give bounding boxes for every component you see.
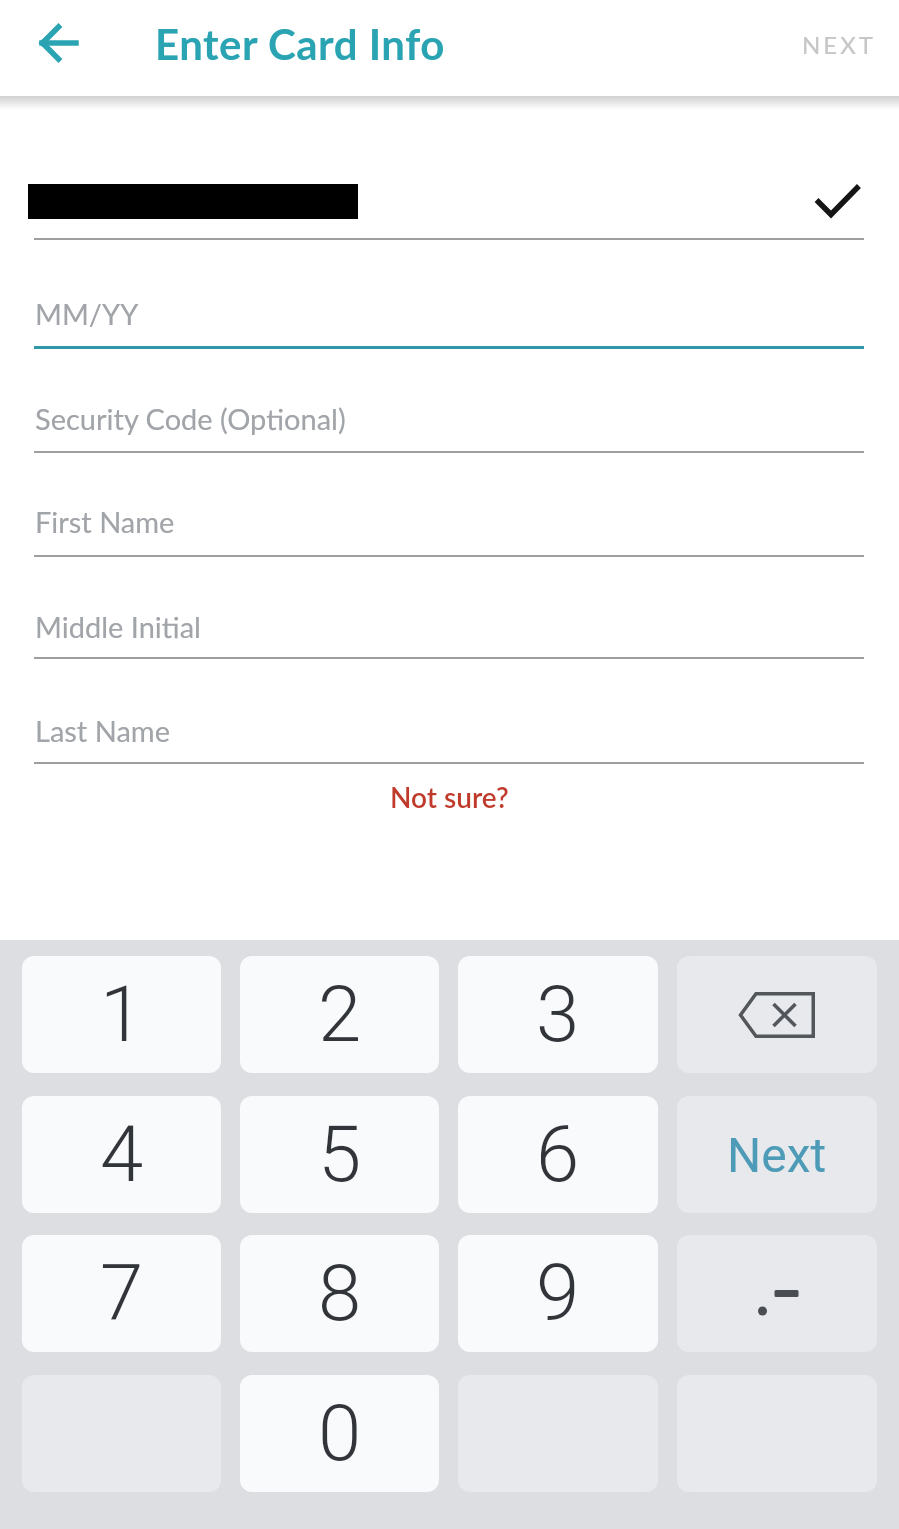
staticText: First Name: [35, 504, 175, 539]
button[interactable]: 0: [240, 1375, 439, 1492]
button[interactable]: Security Code (Optional): [34, 383, 864, 453]
button[interactable]: NEXT: [802, 30, 876, 59]
button[interactable]: Next: [677, 1096, 877, 1213]
button[interactable]: Middle Initial: [34, 591, 864, 661]
staticText: Next: [727, 1127, 827, 1183]
button[interactable]: 3: [458, 956, 658, 1073]
button[interactable]: [677, 956, 877, 1073]
staticText: Enter Card Info: [155, 19, 445, 69]
button[interactable]: First Name: [34, 486, 864, 556]
button[interactable]: 5: [240, 1096, 439, 1213]
staticText: 7: [100, 1248, 144, 1339]
staticText: 4: [100, 1109, 144, 1200]
button[interactable]: [677, 1235, 877, 1352]
staticText: NEXT: [802, 30, 876, 59]
staticText: 2: [318, 969, 362, 1060]
staticText: 8: [318, 1248, 362, 1339]
staticText: Security Code (Optional): [35, 401, 346, 436]
staticText: 3: [536, 969, 580, 1060]
button[interactable]: 8: [240, 1235, 439, 1352]
button[interactable]: 2: [240, 956, 439, 1073]
button[interactable]: 7: [22, 1235, 221, 1352]
button[interactable]: [30, 14, 88, 72]
button[interactable]: MM/YY: [34, 278, 864, 348]
staticText: 5: [318, 1109, 362, 1200]
button[interactable]: 1: [22, 956, 221, 1073]
staticText: 9: [536, 1248, 580, 1339]
staticText: Not sure?: [390, 780, 509, 814]
button[interactable]: 9: [458, 1235, 658, 1352]
staticText: 1: [100, 969, 144, 1060]
button[interactable]: Last Name: [34, 695, 864, 765]
staticText: 6: [536, 1109, 580, 1200]
staticText: Middle Initial: [35, 609, 201, 644]
staticText: Last Name: [35, 713, 170, 748]
button[interactable]: 4: [22, 1096, 221, 1213]
staticText: 0: [318, 1388, 362, 1479]
button[interactable]: Not sure?: [390, 780, 509, 814]
staticText: MM/YY: [35, 296, 139, 331]
button[interactable]: 6: [458, 1096, 658, 1213]
